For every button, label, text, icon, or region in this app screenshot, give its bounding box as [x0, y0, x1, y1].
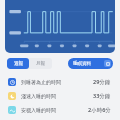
button[interactable]: 淺速入睡的時間 — [0, 89, 120, 103]
button[interactable]: 睡眠資料 — [73, 58, 111, 69]
button[interactable]: 到睡著為止的時間 — [0, 75, 120, 89]
staticText: 29分鐘 — [93, 78, 111, 86]
staticText: 到睡著為止的時間 — [21, 79, 61, 85]
staticText: 安穩入睡的時間 — [21, 107, 56, 113]
staticText: 2小時6分 — [88, 106, 111, 114]
staticText: 週報 — [14, 61, 23, 67]
staticText: 淺速入睡的時間 — [21, 93, 56, 99]
button[interactable] — [5, 0, 115, 53]
staticText: 月報 — [36, 61, 45, 67]
button[interactable]: 月報 — [29, 58, 52, 69]
staticText: 睡眠資料 — [73, 61, 91, 67]
button[interactable]: 週報 — [7, 58, 29, 69]
other: Export sleep data — [104, 60, 111, 67]
staticText: 33分鐘 — [93, 92, 111, 100]
button[interactable]: 安穩入睡的時間 — [0, 103, 120, 117]
